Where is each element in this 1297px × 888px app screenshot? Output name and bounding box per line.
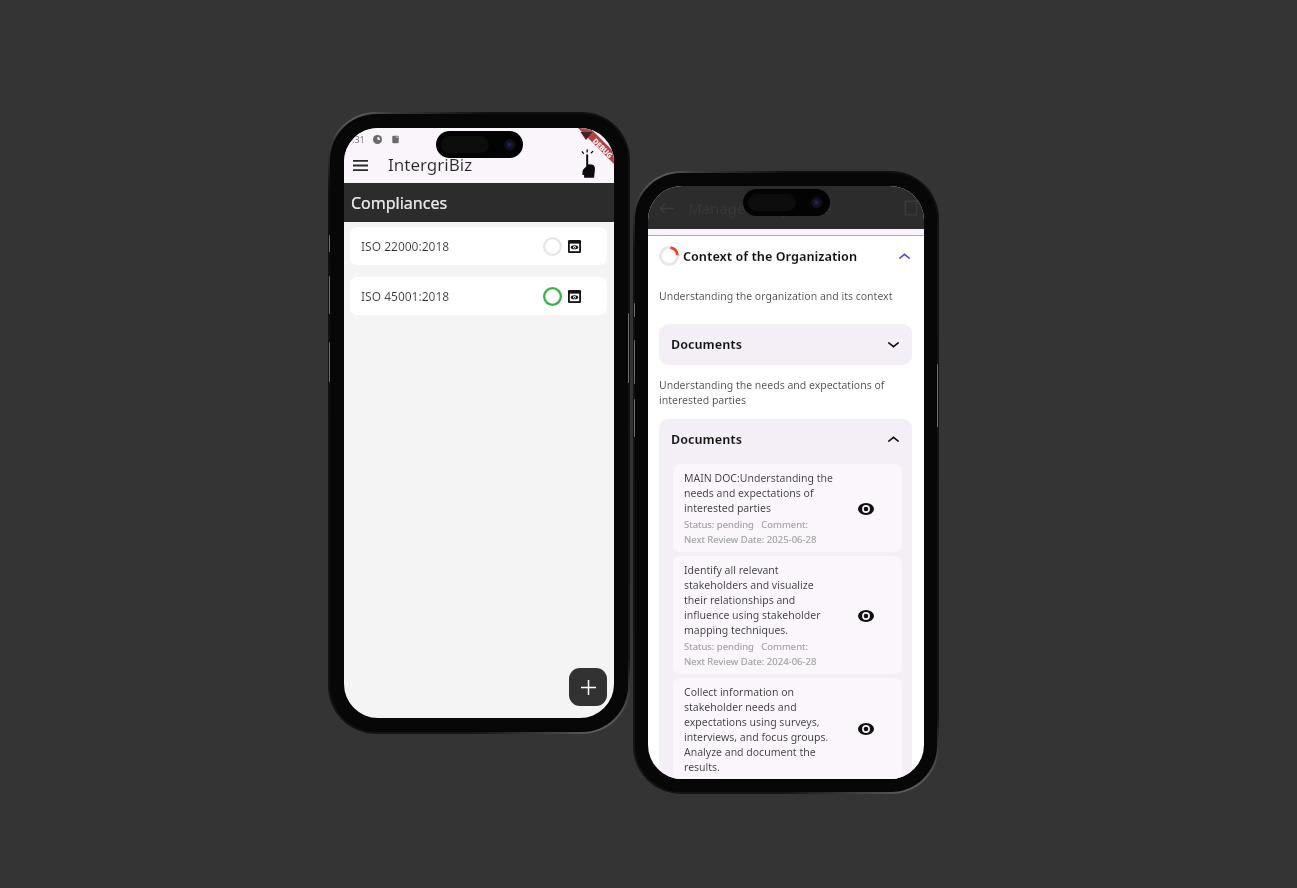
staticText: Collect information on stakeholder needs… [684, 685, 829, 773]
button[interactable]: Documents [902, 199, 920, 217]
staticText: Status: pending Comment: Next Review Dat… [684, 640, 817, 668]
button[interactable]: Collect information on stakeholder needs… [673, 678, 902, 779]
button[interactable]: Menu [348, 153, 372, 177]
staticText: Understanding the needs and expectations… [659, 378, 885, 407]
button[interactable]: Context of the Organization [648, 236, 924, 276]
other: Collapse [898, 250, 911, 263]
button[interactable]: Identify all relevant stakeholders and v… [673, 556, 902, 674]
staticText: Context of the Organization [683, 248, 858, 265]
button[interactable]: View document [857, 499, 875, 519]
button[interactable]: Back [656, 197, 678, 219]
button[interactable]: Preview [568, 290, 581, 303]
button[interactable]: ISO 22000:2018 [350, 227, 607, 265]
staticText: Manage Compliance [688, 198, 833, 218]
staticText: Documents [671, 431, 743, 448]
staticText: Documents [671, 336, 743, 353]
button[interactable]: Preview [568, 240, 581, 253]
staticText: :31 [352, 133, 365, 145]
staticText: IntergriBiz [388, 153, 473, 176]
other: Tap indicator [582, 147, 596, 178]
staticText: MAIN DOC:Understanding the needs and exp… [684, 471, 833, 515]
button[interactable]: View document [857, 606, 875, 626]
staticText: Understanding the organization and its c… [659, 289, 893, 303]
button[interactable]: MAIN DOC:Understanding the needs and exp… [673, 464, 902, 552]
button[interactable]: Documents [659, 419, 912, 460]
staticText: ISO 22000:2018 [361, 238, 450, 254]
button[interactable]: ISO 45001:2018 [350, 277, 607, 315]
other: Collapse [887, 433, 900, 446]
staticText: Status: pending Comment: Next Review Dat… [684, 518, 817, 546]
staticText: Identify all relevant stakeholders and v… [684, 563, 821, 637]
other: Expand [887, 338, 900, 351]
staticText: Compliances [351, 192, 448, 214]
button[interactable]: Add compliance [569, 668, 607, 706]
button[interactable]: Documents [659, 324, 912, 365]
staticText: DEBUG [590, 137, 614, 161]
staticText: ISO 45001:2018 [361, 288, 450, 304]
button[interactable]: View document [857, 719, 875, 739]
